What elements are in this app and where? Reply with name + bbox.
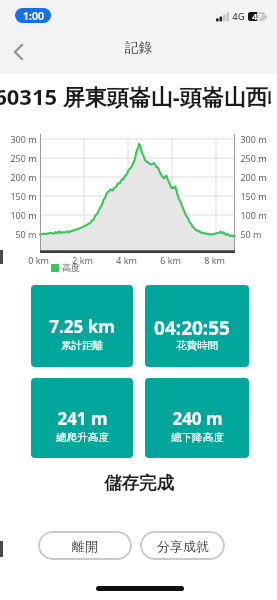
- staticText: 離開: [72, 538, 98, 554]
- staticText: 150 m: [240, 190, 267, 202]
- button[interactable]: 離開: [38, 531, 132, 560]
- staticText: 分享成就: [157, 538, 209, 554]
- staticText: 6 km: [160, 254, 181, 265]
- staticText: 50 m: [240, 228, 262, 240]
- staticText: 04:20:55: [154, 315, 230, 335]
- staticText: 50 m: [15, 228, 37, 240]
- staticText: 1:00: [23, 9, 44, 23]
- staticText: 4G: [232, 10, 245, 23]
- staticText: 總爬升高度: [56, 431, 109, 444]
- staticText: 250 m: [240, 152, 267, 164]
- staticText: 100 m: [240, 209, 267, 221]
- staticText: 240 m: [172, 407, 223, 427]
- staticText: 高度: [62, 262, 80, 273]
- button[interactable]: 7.25 km: [31, 285, 133, 367]
- button[interactable]: 240 m: [145, 378, 249, 458]
- staticText: 8 km: [204, 254, 225, 265]
- staticText: 累計距離: [61, 339, 103, 352]
- button[interactable]: 04:20:55: [145, 285, 249, 367]
- staticText: 記錄: [125, 39, 152, 54]
- staticText: 100 m: [10, 209, 37, 221]
- button[interactable]: 分享成就: [140, 531, 225, 560]
- staticText: 150 m: [10, 190, 37, 202]
- staticText: 7.25 km: [49, 315, 115, 335]
- staticText: 2 km: [72, 254, 93, 265]
- button[interactable]: [14, 44, 23, 60]
- staticText: 300 m: [240, 133, 267, 145]
- staticText: 47: [252, 11, 262, 23]
- staticText: 儲存完成: [104, 472, 174, 494]
- staticText: 花費時間: [176, 339, 218, 352]
- staticText: 250 m: [10, 152, 37, 164]
- staticText: 總下降高度: [171, 431, 224, 444]
- staticText: 0 km: [28, 254, 49, 265]
- staticText: 300 m: [10, 133, 37, 145]
- staticText: 60315 屏東頭崙山-頭崙山西峰: [0, 81, 271, 111]
- button[interactable]: 241 m: [31, 378, 133, 458]
- staticText: 241 m: [57, 407, 108, 427]
- staticText: 200 m: [10, 171, 37, 183]
- staticText: 4 km: [116, 254, 137, 265]
- staticText: 200 m: [240, 171, 267, 183]
